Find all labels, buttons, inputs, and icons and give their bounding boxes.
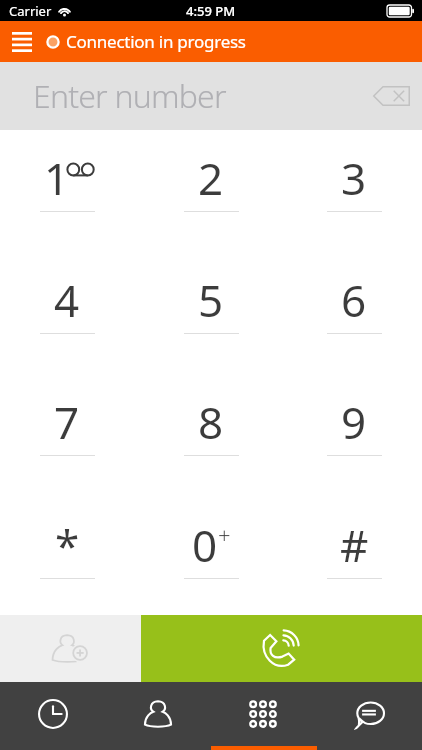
staticText: * [55,515,80,575]
button[interactable]: 4 [6,248,128,360]
staticText: 1 [44,148,70,208]
staticText: 2 [198,148,224,208]
button[interactable]: 1 [6,126,128,238]
staticText: + [218,520,231,550]
staticText: # [340,515,369,575]
button[interactable]: 7 [6,370,128,482]
button[interactable]: 5 [150,248,272,360]
button[interactable]: Call [141,615,422,682]
staticText: 4 [54,270,80,330]
staticText: 8 [198,392,224,452]
button[interactable]: Add contact [0,615,141,682]
button[interactable]: * [6,493,128,605]
staticText: 6 [341,270,367,330]
button[interactable]: Menu [0,21,44,62]
staticText: Enter number [33,74,226,118]
button[interactable]: 6 [293,248,415,360]
button[interactable]: 3 [293,126,415,238]
staticText: 5 [198,270,224,330]
staticText: Connection in progress [66,30,246,53]
staticText: 3 [341,148,367,208]
button[interactable]: Backspace [360,62,422,130]
button[interactable]: 9 [293,370,415,482]
button[interactable]: Keypad [210,682,316,750]
staticText: 9 [341,392,367,452]
staticText: 0 [192,515,218,575]
button[interactable]: 2 [150,126,272,238]
staticText: Carrier [9,2,52,20]
staticText: 4:59 PM [186,2,236,20]
button[interactable]: Contacts [105,682,210,750]
staticText: 7 [54,392,80,452]
button[interactable]: Messages [316,682,422,750]
button[interactable]: Recents [0,682,105,750]
button[interactable]: # [293,493,415,605]
button[interactable]: 0 [150,493,272,605]
button[interactable]: 8 [150,370,272,482]
